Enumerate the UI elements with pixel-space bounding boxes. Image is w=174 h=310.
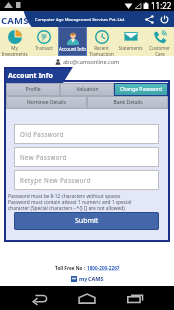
staticText: Account Info <box>59 46 86 52</box>
button[interactable]: Bank Details <box>87 96 168 109</box>
staticText: Password must be 8-12 characters without… <box>8 193 132 211</box>
button[interactable]: Recent <box>87 27 116 56</box>
staticText: CAMS <box>1 14 29 27</box>
button[interactable]: 1800-200-2267 <box>87 265 120 271</box>
button[interactable]: Logout <box>158 13 171 26</box>
staticText: my <box>79 275 88 282</box>
button[interactable]: Transact <box>29 27 58 56</box>
staticText: Change Password <box>120 86 162 93</box>
button[interactable]: Recents <box>116 286 154 310</box>
button[interactable]: Statements <box>116 27 145 56</box>
staticText: Old Password <box>20 130 65 138</box>
staticText: My <box>11 45 18 51</box>
staticText: Toll Free No : <box>55 265 87 271</box>
staticText: Computer Age Management Services Pvt. Lt… <box>35 17 125 23</box>
button[interactable]: Retype New Password <box>14 170 159 190</box>
button[interactable]: Nominee Details <box>6 96 87 109</box>
button[interactable]: Profile <box>6 83 60 96</box>
staticText: abc@camsonline.com <box>63 58 120 65</box>
staticText: Profile <box>25 86 41 93</box>
staticText: Investments <box>1 51 28 56</box>
button[interactable]: Home <box>68 286 106 310</box>
button[interactable]: Customer <box>145 27 174 56</box>
button[interactable]: Submit <box>14 212 159 230</box>
staticText: Transact <box>35 45 53 51</box>
staticText: Customer <box>149 45 170 51</box>
button[interactable]: Change Password <box>114 83 168 96</box>
staticText: CAMS <box>88 275 104 282</box>
button[interactable]: Valuation <box>60 83 114 96</box>
staticText: Transaction <box>89 51 114 56</box>
staticText: Submit <box>75 216 99 226</box>
staticText: Care <box>155 51 165 56</box>
button[interactable]: Back <box>20 286 58 310</box>
staticText: 11:22 <box>151 0 172 11</box>
staticText: Valuation <box>76 86 99 93</box>
button[interactable]: My <box>0 27 29 56</box>
staticText: Statements <box>118 45 143 51</box>
button[interactable]: Account Info <box>59 28 86 55</box>
staticText: Retype New Password <box>20 176 91 184</box>
button[interactable]: Share <box>143 13 156 26</box>
staticText: Account Info <box>8 71 53 81</box>
staticText: Recent <box>94 45 109 51</box>
staticText: New Password <box>20 153 67 161</box>
staticText: Nominee Details <box>27 99 66 106</box>
button[interactable]: New Password <box>14 147 159 167</box>
staticText: Bank Details <box>113 99 143 106</box>
button[interactable]: Old Password <box>14 124 159 144</box>
